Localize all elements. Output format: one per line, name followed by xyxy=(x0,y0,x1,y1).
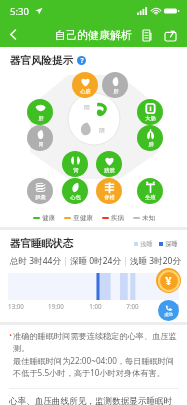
staticText: 最佳睡眠时间为22:00~04:00，每日睡眠时间不低于5.5小时，高于10小时… xyxy=(13,355,178,379)
staticText: • xyxy=(9,331,12,341)
button[interactable]: 生殖 xyxy=(137,178,163,204)
staticText: 胃 xyxy=(38,141,44,148)
staticText: 浅睡 xyxy=(140,240,153,248)
staticText: 深睡 xyxy=(165,240,178,248)
button[interactable]: Report xyxy=(137,24,159,46)
staticText: 心包 xyxy=(70,194,81,201)
button[interactable]: 胃 xyxy=(27,125,53,151)
staticText: 自己的健康解析 xyxy=(55,28,132,42)
button[interactable]: 心脏 xyxy=(72,72,98,98)
staticText: 亚健康 xyxy=(73,214,93,222)
staticText: 1:00 xyxy=(89,302,102,310)
staticText: 心率、血压曲线所见，监测数据显示睡眠时间不足。充足的睡眠时间对缓解身体疲劳有重要 xyxy=(9,396,178,405)
staticText: 膀胱 xyxy=(104,167,115,174)
staticText: 健康 xyxy=(42,214,55,222)
button[interactable]: 脊椎 xyxy=(96,178,122,204)
staticText: ? xyxy=(80,56,84,65)
staticText: 器官风险提示 xyxy=(10,54,73,67)
staticText: 胆囊 xyxy=(35,194,46,201)
staticText: 深睡 0时24分 xyxy=(70,255,121,267)
staticText: 心脏 xyxy=(80,88,91,95)
staticText: 求助 xyxy=(164,312,173,317)
button[interactable]: Help xyxy=(77,56,86,65)
staticText: 肾 xyxy=(73,167,79,174)
staticText: 疾病 xyxy=(111,214,124,222)
staticText: 13:00 xyxy=(163,302,179,310)
staticText: 器官睡眠状态 xyxy=(10,237,73,250)
staticText: 肝 xyxy=(38,115,44,122)
button[interactable]: 大肠 xyxy=(137,99,163,125)
staticText: 浅睡 3时20分 xyxy=(130,255,181,267)
staticText: 肺 xyxy=(148,141,154,148)
button[interactable]: 膀胱 xyxy=(96,151,122,177)
staticText: ¥ xyxy=(165,273,172,288)
staticText: 19:00 xyxy=(48,302,64,310)
staticText: 脊椎 xyxy=(104,194,115,201)
button[interactable]: 胆囊 xyxy=(27,178,53,204)
button[interactable]: Pay xyxy=(156,268,181,293)
staticText: 准确的睡眠时间需要连续稳定的心率、血压监测。 xyxy=(13,331,178,353)
button[interactable]: 肝 xyxy=(27,99,53,125)
staticText: 生殖 xyxy=(145,194,156,201)
staticText: 13:00 xyxy=(8,302,24,310)
button[interactable]: Back xyxy=(0,22,26,47)
button[interactable]: 肺 xyxy=(137,125,163,151)
staticText: 肝 xyxy=(113,88,119,95)
staticText: 大肠 xyxy=(145,115,156,122)
staticText: 阳 xyxy=(84,104,90,111)
staticText: 总时 3时44分 xyxy=(10,255,61,267)
button[interactable]: 肾 xyxy=(62,151,88,177)
button[interactable]: 心包 xyxy=(62,178,88,204)
staticText: 7:00 xyxy=(126,302,139,310)
button[interactable]: Call support xyxy=(158,300,179,321)
button[interactable]: Share xyxy=(159,24,181,46)
staticText: 5:30 xyxy=(10,5,29,18)
staticText: 阴 xyxy=(99,127,105,134)
staticText: 未知 xyxy=(142,214,155,222)
button[interactable]: 肝 xyxy=(102,72,128,98)
